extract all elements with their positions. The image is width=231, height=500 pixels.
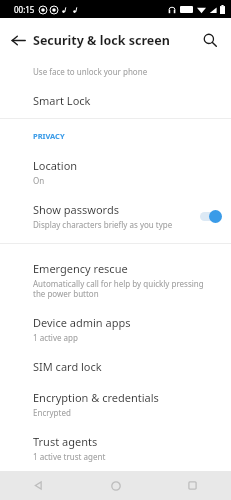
staticText: Location — [33, 158, 78, 173]
staticText: Security & lock screen — [33, 32, 170, 49]
staticText: 00:15 — [14, 4, 35, 15]
staticText: Show passwords — [33, 202, 119, 217]
button[interactable]: Encryption & credentials — [0, 383, 231, 427]
button[interactable]: Show passwords — [0, 195, 231, 239]
staticText: Trust agents — [33, 434, 98, 449]
button[interactable]: Device admin apps — [0, 308, 231, 352]
button[interactable]: SIM card lock — [0, 352, 231, 383]
button[interactable]: Back — [0, 471, 77, 500]
staticText: Encryption & credentials — [33, 390, 159, 405]
staticText: Device admin apps — [33, 315, 131, 330]
staticText: PRIVACY — [33, 131, 65, 141]
button[interactable]: Smart Lock — [0, 91, 231, 118]
staticText: SIM card lock — [33, 359, 102, 374]
button[interactable]: Back — [4, 26, 32, 54]
staticText: Smart Lock — [33, 93, 91, 108]
staticText: 1 active app — [33, 332, 78, 343]
staticText: On — [33, 175, 45, 186]
staticText: Emergency rescue — [33, 261, 128, 276]
button[interactable]: Trust agents — [0, 427, 231, 471]
button[interactable]: Search — [197, 27, 223, 53]
button[interactable]: Location — [0, 151, 231, 195]
button[interactable]: Emergency rescue — [0, 254, 231, 308]
button[interactable]: Recents — [154, 471, 231, 500]
button[interactable]: Home — [77, 471, 154, 500]
staticText: Encrypted — [33, 407, 71, 418]
staticText: Use face to unlock your phone — [33, 66, 148, 77]
staticText: Automatically call for help by quickly p… — [33, 278, 211, 299]
staticText: 1 active trust agent — [33, 451, 106, 462]
staticText: Display characters briefly as you type — [33, 219, 173, 230]
